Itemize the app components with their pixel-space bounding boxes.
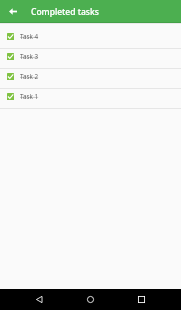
button[interactable]: Task 4 xyxy=(0,29,181,49)
staticText: Task 3 xyxy=(20,52,39,61)
button[interactable]: Task 2 xyxy=(0,69,181,89)
button[interactable]: Navigate up xyxy=(0,0,23,23)
staticText: Task 4 xyxy=(20,32,39,41)
button[interactable]: Back xyxy=(21,289,57,310)
button[interactable]: Task 1 xyxy=(0,89,181,109)
staticText: Task 2 xyxy=(20,72,39,81)
button[interactable]: Recent apps xyxy=(123,289,159,310)
staticText: Completed tasks xyxy=(31,6,99,18)
staticText: Task 1 xyxy=(20,92,39,101)
button[interactable]: Home xyxy=(72,289,108,310)
button[interactable]: Task 3 xyxy=(0,49,181,69)
